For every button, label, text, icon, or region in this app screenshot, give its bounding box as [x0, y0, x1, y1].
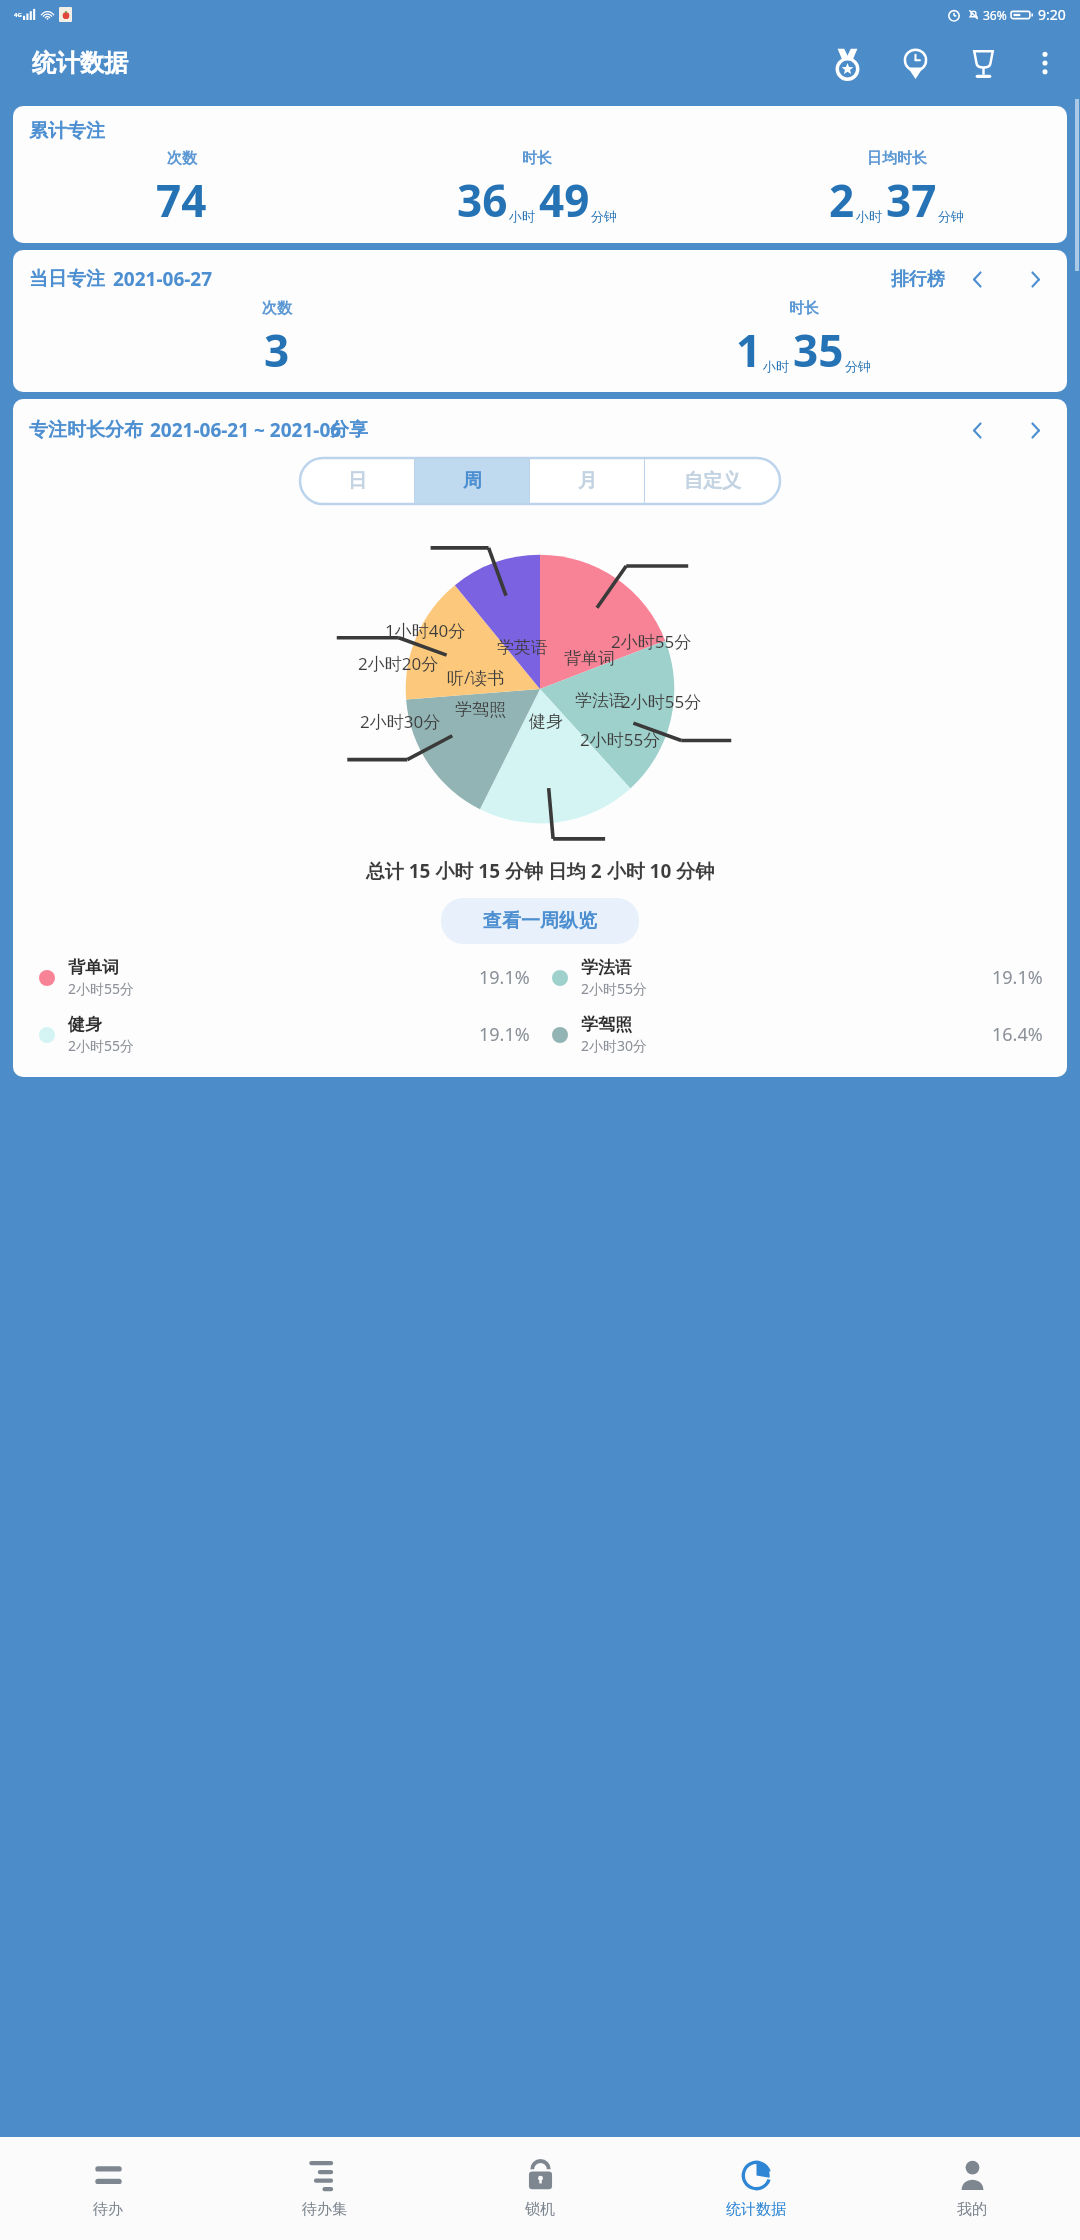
button[interactable]: 周: [415, 458, 530, 504]
staticText: 2021-06-21 ~ 2021-06: [150, 417, 342, 443]
staticText: 待办: [93, 2200, 123, 2219]
staticText: 背单词: [564, 648, 615, 669]
staticText: 学驾照: [455, 699, 506, 720]
staticText: 分钟: [591, 208, 617, 224]
button[interactable]: 分享: [330, 418, 368, 442]
staticText: 2小时30分: [360, 710, 441, 733]
staticText: 健身: [529, 711, 563, 732]
staticText: 2小时55分: [68, 979, 135, 998]
staticText: 学驾照: [581, 1014, 632, 1035]
button[interactable]: Previous: [961, 414, 993, 446]
button[interactable]: 月: [530, 458, 645, 504]
staticText: 49: [539, 170, 590, 230]
staticText: 2小时55分: [68, 1036, 135, 1055]
staticText: 4G: [14, 11, 22, 19]
button[interactable]: 排行榜: [891, 268, 945, 291]
staticText: 2小时55分: [580, 728, 661, 751]
staticText: 36: [457, 170, 508, 230]
staticText: 16.4%: [992, 1022, 1043, 1047]
button[interactable]: 锁机: [432, 2137, 648, 2240]
staticText: 2小时55分: [581, 979, 648, 998]
button[interactable]: 健身: [27, 1014, 540, 1055]
staticText: 学法语: [575, 690, 626, 711]
button[interactable]: 我的: [864, 2137, 1080, 2240]
staticText: 次数: [262, 299, 292, 318]
staticText: 分钟: [938, 208, 964, 224]
staticText: 锁机: [525, 2200, 555, 2219]
staticText: 2小时55分: [611, 630, 692, 653]
staticText: 健身: [68, 1014, 102, 1035]
button[interactable]: Next: [1019, 263, 1051, 295]
staticText: 35: [793, 320, 844, 380]
staticText: 查看一周纵览: [483, 909, 597, 933]
staticText: 累计专注: [29, 119, 105, 143]
staticText: 专注时长分布: [29, 418, 143, 442]
staticText: 3: [264, 320, 290, 380]
staticText: 小时: [509, 208, 535, 224]
button[interactable]: Trophy: [960, 40, 1006, 86]
staticText: 统计数据: [726, 2200, 786, 2219]
button[interactable]: 学法语: [540, 957, 1053, 998]
staticText: 74: [156, 170, 207, 230]
staticText: 周: [463, 469, 482, 493]
staticText: 日: [348, 469, 367, 493]
button[interactable]: Previous: [961, 263, 993, 295]
staticText: 小时: [763, 358, 789, 374]
staticText: 1: [736, 320, 762, 380]
button[interactable]: 统计数据: [648, 2137, 864, 2240]
staticText: 日均时长: [867, 149, 927, 168]
staticText: 学法语: [581, 957, 632, 978]
staticText: 19.1%: [992, 965, 1043, 990]
staticText: 37: [886, 170, 937, 230]
staticText: 19.1%: [479, 965, 530, 990]
staticText: 9:20: [1038, 5, 1066, 24]
staticText: 自定义: [684, 469, 741, 493]
staticText: 我的: [957, 2200, 987, 2219]
staticText: 分享: [330, 418, 368, 442]
staticText: 2小时30分: [581, 1036, 648, 1055]
staticText: 1小时40分: [385, 619, 466, 642]
button[interactable]: Timer: [892, 40, 938, 86]
staticText: 19.1%: [479, 1022, 530, 1047]
staticText: 2021-06-27: [113, 266, 213, 292]
staticText: 总计 15 小时 15 分钟 日均 2 小时 10 分钟: [13, 858, 1067, 884]
button[interactable]: 待办: [0, 2137, 216, 2240]
staticText: 统计数据: [32, 48, 128, 78]
button[interactable]: 待办集: [216, 2137, 432, 2240]
staticText: 当日专注: [29, 267, 105, 291]
staticText: 背单词: [68, 957, 119, 978]
staticText: 小时: [856, 208, 882, 224]
button[interactable]: Next: [1019, 414, 1051, 446]
staticText: 听/读书: [447, 666, 505, 689]
staticText: 时长: [789, 299, 819, 318]
staticText: 时长: [522, 149, 552, 168]
button[interactable]: 查看一周纵览: [441, 898, 639, 944]
button[interactable]: 日: [300, 458, 415, 504]
button[interactable]: 背单词: [27, 957, 540, 998]
button[interactable]: More options: [1022, 40, 1068, 86]
staticText: 月: [578, 469, 597, 493]
staticText: 待办集: [302, 2200, 347, 2219]
staticText: 36%: [983, 7, 1007, 23]
button[interactable]: 学驾照: [540, 1014, 1053, 1055]
staticText: 2小时20分: [358, 652, 439, 675]
staticText: 2: [829, 170, 855, 230]
staticText: 学英语: [497, 637, 548, 658]
staticText: 分钟: [845, 358, 871, 374]
staticText: 2小时55分: [621, 690, 702, 713]
button[interactable]: 自定义: [645, 458, 780, 504]
staticText: 次数: [167, 149, 197, 168]
staticText: 排行榜: [891, 268, 945, 291]
button[interactable]: Medal: [824, 40, 870, 86]
